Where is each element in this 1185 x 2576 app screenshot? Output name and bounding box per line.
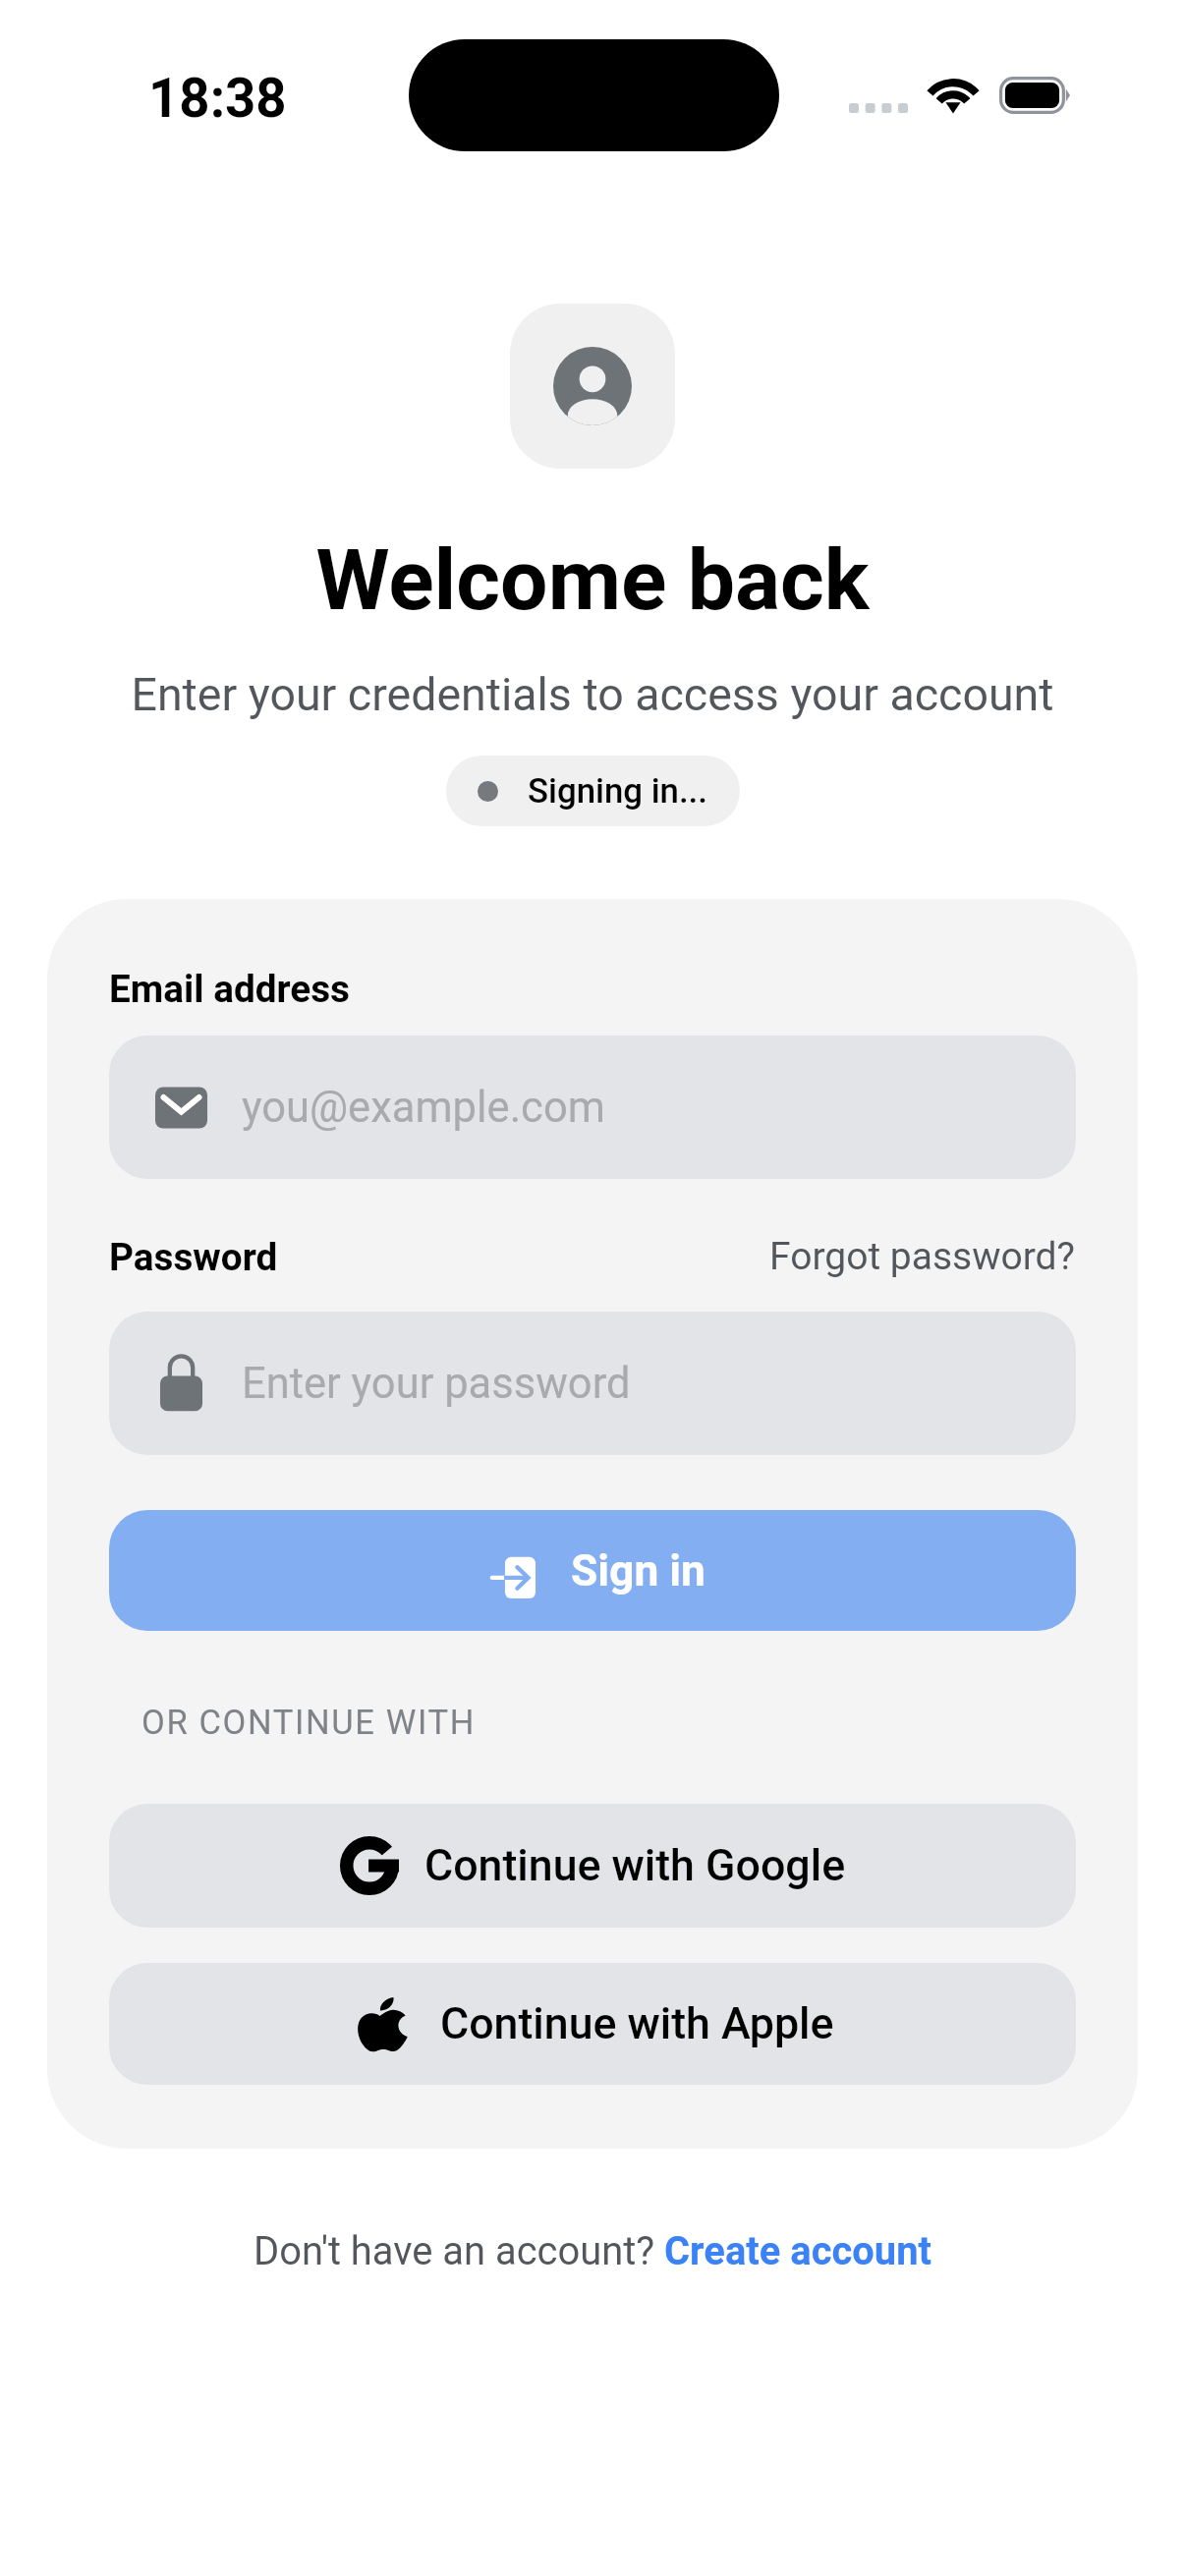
staticText: Continue with Apple	[440, 1998, 834, 2049]
button[interactable]: Continue with Google	[109, 1804, 1076, 1928]
button[interactable]: Continue with Apple	[109, 1963, 1076, 2085]
staticText: Continue with Google	[424, 1840, 846, 1891]
staticText: Enter your password	[242, 1359, 631, 1409]
staticText: Don't have an account?	[254, 2228, 664, 2274]
staticText: 18:38	[148, 67, 287, 130]
button[interactable]: Create account	[664, 2228, 931, 2274]
button[interactable]: Enter your password	[109, 1312, 1076, 1455]
button[interactable]: you@example.com	[109, 1036, 1076, 1179]
staticText: Sign in	[571, 1545, 705, 1596]
staticText: OR CONTINUE WITH	[141, 1703, 477, 1742]
button[interactable]: Signing in...	[446, 756, 740, 826]
staticText: Signing in...	[528, 771, 708, 812]
button[interactable]: Sign in	[109, 1510, 1076, 1631]
staticText: Email address	[109, 967, 351, 1011]
staticText: Welcome back	[0, 531, 1185, 630]
staticText: you@example.com	[242, 1083, 605, 1133]
staticText: Enter your credentials to access your ac…	[0, 668, 1185, 721]
button[interactable]: Forgot password?	[769, 1234, 1076, 1279]
button[interactable]: Account avatar	[510, 304, 675, 469]
staticText: Password	[109, 1235, 278, 1279]
